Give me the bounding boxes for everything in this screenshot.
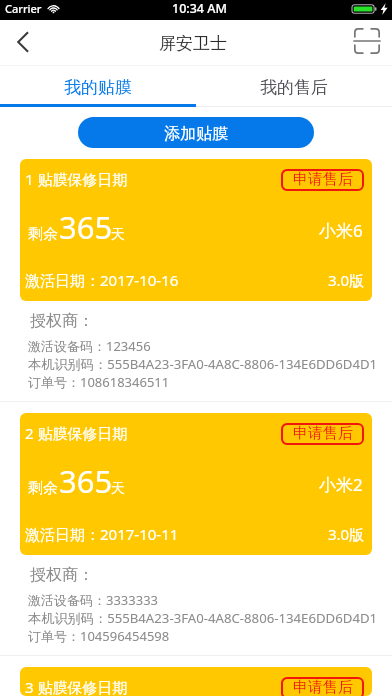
button[interactable]: 2 贴膜保修日期 (20, 413, 372, 555)
staticText: 激活日期：2017-10-16 (25, 270, 179, 290)
staticText: 激活设备码：3333333 (28, 591, 159, 609)
staticText: 365 (59, 460, 113, 502)
staticText: 屏安卫士 (159, 33, 227, 54)
staticText: 天 (111, 480, 125, 498)
button[interactable]: 1 贴膜保修日期 (20, 159, 372, 301)
button[interactable]: Back (1, 20, 45, 64)
staticText: 申请售后 (293, 424, 353, 443)
staticText: 3 贴膜保修日期 (25, 677, 128, 696)
button[interactable]: 3 贴膜保修日期 (20, 667, 372, 696)
staticText: 激活日期：2017-10-11 (25, 524, 179, 544)
staticText: 剩余 (28, 225, 58, 244)
staticText: 我的贴膜 (64, 77, 132, 98)
staticText: 剩余 (28, 479, 58, 498)
staticText: 申请售后 (293, 678, 353, 696)
staticText: 授权商： (30, 311, 94, 331)
staticText: 授权商： (30, 565, 94, 585)
button[interactable]: 申请售后 (281, 677, 364, 696)
button[interactable]: 申请售后 (281, 423, 364, 445)
staticText: 申请售后 (293, 170, 353, 189)
staticText: 10:34 AM (172, 0, 227, 17)
staticText: 添加贴膜 (164, 124, 228, 144)
staticText: 本机识别码：555B4A23-3FA0-4A8C-8806-134E6DD6D4… (28, 355, 378, 373)
staticText: 激活设备码：123456 (28, 337, 151, 355)
staticText: 2 贴膜保修日期 (25, 423, 128, 443)
button[interactable]: 我的贴膜 (0, 66, 196, 104)
staticText: 订单号：108618346511 (28, 373, 170, 391)
staticText: 3.0版 (328, 524, 365, 544)
staticText: 小米6 (319, 219, 363, 242)
button[interactable]: 添加贴膜 (78, 117, 314, 148)
button[interactable]: 申请售后 (281, 169, 364, 191)
staticText: Carrier (5, 1, 42, 16)
staticText: 订单号：104596454598 (28, 627, 170, 645)
staticText: 1 贴膜保修日期 (25, 169, 128, 189)
staticText: 本机识别码：555B4A23-3FA0-4A8C-8806-134E6DD6D4… (28, 609, 378, 627)
staticText: 3.0版 (328, 270, 365, 290)
staticText: 小米2 (319, 473, 363, 496)
staticText: 365 (59, 206, 113, 248)
button[interactable]: 我的售后 (196, 66, 392, 104)
button[interactable]: Scan (345, 19, 389, 63)
staticText: 天 (111, 226, 125, 244)
staticText: 我的售后 (260, 77, 328, 98)
